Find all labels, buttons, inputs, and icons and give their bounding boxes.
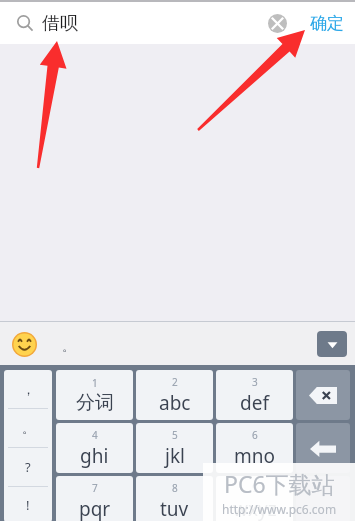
staticText: 。 — [22, 420, 35, 436]
button[interactable]: Space — [296, 476, 350, 521]
staticText: 2 — [172, 375, 178, 389]
staticText: def — [240, 390, 269, 416]
button[interactable]: 5 — [136, 423, 213, 473]
button[interactable]: Enter — [296, 423, 350, 473]
button[interactable]: Clear — [261, 7, 293, 39]
staticText: tuv — [160, 496, 189, 521]
staticText: 9 — [252, 481, 258, 495]
button[interactable]: 6 — [216, 423, 293, 473]
staticText: 7 — [92, 481, 98, 495]
staticText: PC6下载站 — [224, 468, 335, 499]
button[interactable]: Backspace — [296, 370, 350, 420]
staticText: jkl — [165, 443, 185, 469]
staticText: 5 — [172, 428, 178, 442]
button[interactable]: 3 — [216, 370, 293, 420]
staticText: 确定 — [310, 13, 344, 34]
staticText: ghi — [80, 443, 109, 469]
button[interactable]: Hide keyboard — [317, 331, 347, 357]
staticText: mno — [234, 443, 276, 469]
button[interactable]: 4 — [56, 423, 133, 473]
button[interactable]: 2 — [136, 370, 213, 420]
button[interactable]: 8 — [136, 476, 213, 521]
staticText: ， — [22, 381, 35, 397]
button[interactable]: 7 — [56, 476, 133, 521]
button[interactable]: 。 — [4, 409, 52, 447]
staticText: 1 — [92, 376, 98, 390]
button[interactable]: 确定 — [299, 2, 355, 44]
button[interactable]: ! — [4, 487, 52, 521]
staticText: pqr — [79, 496, 111, 521]
staticText: abc — [159, 390, 191, 416]
staticText: ? — [25, 458, 31, 476]
staticText: ! — [26, 496, 30, 514]
staticText: wxyz — [233, 496, 277, 521]
button[interactable]: Emoji — [7, 327, 41, 361]
staticText: 。 — [62, 338, 75, 354]
staticText: 借呗 — [42, 12, 78, 35]
button[interactable]: ， — [4, 370, 52, 408]
staticText: 4 — [92, 428, 98, 442]
button[interactable]: 1 — [56, 370, 133, 420]
button[interactable]: ? — [4, 448, 52, 486]
staticText: 6 — [252, 428, 258, 442]
staticText: 分词 — [76, 391, 114, 415]
staticText: 3 — [252, 375, 258, 389]
button[interactable]: Search — [8, 6, 42, 40]
staticText: 8 — [172, 481, 178, 495]
button[interactable]: 9 — [216, 476, 293, 521]
staticText: http://www.pc6.com — [222, 501, 337, 517]
